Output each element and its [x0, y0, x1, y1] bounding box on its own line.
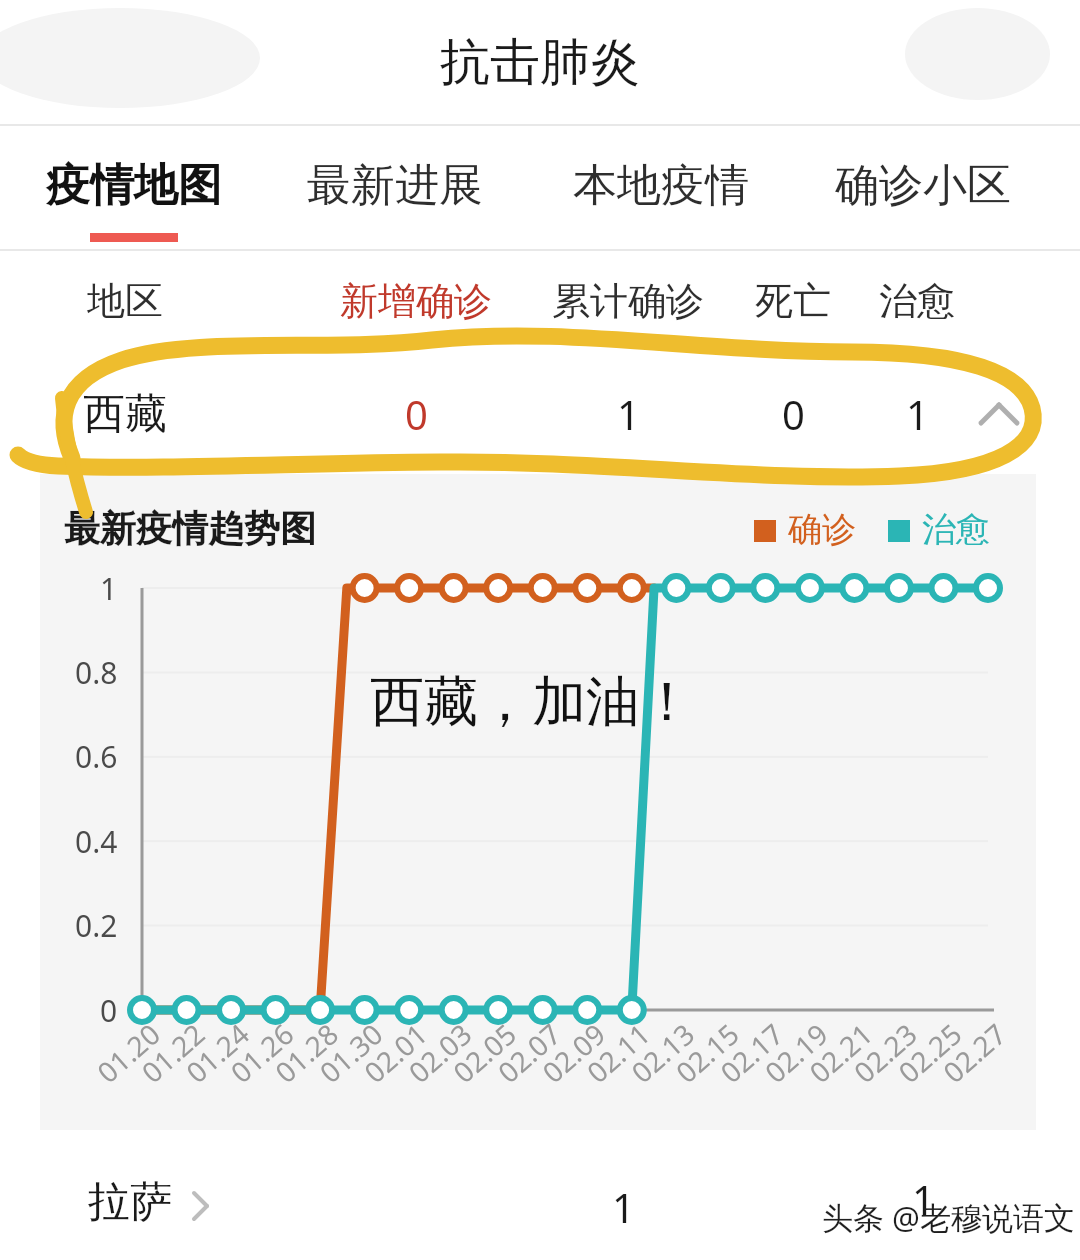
staticText: 治愈 — [922, 508, 990, 551]
staticText: 治愈 — [879, 277, 955, 325]
staticText: 新增确诊 — [340, 277, 492, 325]
staticText: 0 — [782, 387, 805, 441]
staticText: 本地疫情 — [573, 158, 749, 213]
staticText: 1 — [612, 1180, 635, 1234]
button[interactable]: 疫情地图 — [14, 126, 254, 244]
staticText: 疫情地图 — [46, 158, 222, 213]
staticText: 0 — [405, 387, 428, 441]
staticText: 死亡 — [755, 277, 831, 325]
staticText: 抗击肺炎 — [440, 31, 640, 94]
staticText: 1 — [617, 387, 640, 441]
button[interactable]: 本地疫情 — [541, 126, 781, 244]
button[interactable] — [0, 1146, 1080, 1256]
button[interactable]: 收起 — [960, 378, 1038, 450]
staticText: 头条 @老穆说语文 — [822, 1196, 1075, 1238]
button[interactable]: 确诊小区 — [803, 126, 1043, 244]
staticText: 地区 — [87, 277, 163, 325]
button[interactable] — [0, 366, 1080, 462]
staticText: 确诊 — [788, 508, 856, 551]
button[interactable]: 最新进展 — [275, 126, 515, 244]
staticText: 最新疫情趋势图 — [64, 506, 316, 551]
staticText: 拉萨 — [88, 1176, 172, 1229]
staticText: 1 — [912, 1172, 935, 1226]
staticText: 累计确诊 — [552, 277, 704, 325]
staticText: 最新进展 — [307, 158, 483, 213]
staticText: 确诊小区 — [835, 158, 1011, 213]
staticText: 西藏 — [83, 388, 167, 441]
staticText: 1 — [906, 387, 929, 441]
